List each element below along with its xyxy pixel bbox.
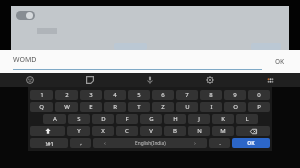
button[interactable]: OK <box>232 138 270 148</box>
staticText: OK <box>247 140 255 147</box>
button[interactable]: K <box>212 114 234 124</box>
button[interactable]: More options <box>240 73 300 87</box>
staticText: 3 <box>89 91 93 99</box>
staticText: C <box>125 127 129 135</box>
staticText: R <box>113 103 117 111</box>
staticText: 4 <box>113 91 117 99</box>
button[interactable]: L <box>236 114 258 124</box>
staticText: V <box>149 127 153 135</box>
button[interactable]: P <box>248 102 270 112</box>
button[interactable]: 6 <box>152 90 174 100</box>
button[interactable]: , <box>70 138 91 148</box>
staticText: U <box>185 103 190 111</box>
staticText: M <box>220 127 226 135</box>
button[interactable]: 0 <box>248 90 270 100</box>
staticText: 2 <box>65 91 69 99</box>
button[interactable]: 2 <box>55 90 78 100</box>
button[interactable]: E <box>80 102 102 112</box>
button[interactable]: X <box>92 126 114 136</box>
staticText: 8 <box>209 91 213 99</box>
button[interactable]: V <box>140 126 162 136</box>
button[interactable]: H <box>164 114 186 124</box>
button[interactable]: 7 <box>176 90 198 100</box>
staticText: H <box>173 115 178 123</box>
button[interactable]: Emoji keyboard <box>0 73 60 87</box>
button[interactable]: English(India) <box>93 138 207 148</box>
button[interactable]: 9 <box>224 90 246 100</box>
button[interactable]: I <box>200 102 222 112</box>
button[interactable]: A <box>43 114 66 124</box>
staticText: Q <box>39 103 44 111</box>
button[interactable]: Backspace <box>236 126 270 136</box>
staticText: J <box>198 115 200 123</box>
button[interactable]: OK <box>270 53 290 70</box>
button[interactable]: Z <box>152 102 174 112</box>
button[interactable]: J <box>188 114 210 124</box>
staticText: 5 <box>137 91 141 99</box>
staticText: 6 <box>161 91 165 99</box>
button[interactable]: . <box>209 138 230 148</box>
staticText: › <box>194 139 196 147</box>
button[interactable]: Voice input <box>120 73 180 87</box>
staticText: N <box>197 127 202 135</box>
button[interactable]: T <box>128 102 150 112</box>
staticText: L <box>245 115 249 123</box>
staticText: 0 <box>257 91 261 99</box>
staticText: D <box>101 115 106 123</box>
button[interactable]: Shift <box>30 126 65 136</box>
staticText: !#1 <box>45 140 54 147</box>
staticText: OK <box>275 57 285 66</box>
button[interactable]: D <box>92 114 114 124</box>
button[interactable]: Stickers <box>60 73 120 87</box>
button[interactable]: 1 <box>30 90 53 100</box>
staticText: I <box>210 103 213 111</box>
staticText: 1 <box>40 91 44 99</box>
button[interactable]: 3 <box>80 90 102 100</box>
button[interactable]: B <box>164 126 186 136</box>
staticText: E <box>89 103 93 111</box>
staticText: 9 <box>233 91 237 99</box>
staticText: WOMD <box>13 55 37 65</box>
button[interactable]: S <box>68 114 90 124</box>
staticText: G <box>149 115 154 123</box>
button[interactable]: W <box>55 102 78 112</box>
button[interactable]: O <box>224 102 246 112</box>
staticText: Z <box>161 103 165 111</box>
button[interactable]: M <box>212 126 234 136</box>
staticText: T <box>137 103 141 111</box>
staticText: ‹ <box>104 139 106 147</box>
staticText: A <box>53 115 57 123</box>
button[interactable]: 5 <box>128 90 150 100</box>
button[interactable]: C <box>116 126 138 136</box>
button[interactable]: WOMD <box>13 50 262 73</box>
staticText: 7 <box>185 91 189 99</box>
button[interactable]: N <box>188 126 210 136</box>
staticText: F <box>125 115 129 123</box>
button[interactable]: !#1 <box>30 138 68 148</box>
staticText: W <box>64 103 70 111</box>
button[interactable]: F <box>116 114 138 124</box>
button[interactable]: 4 <box>104 90 126 100</box>
button[interactable]: Y <box>67 126 90 136</box>
button[interactable]: R <box>104 102 126 112</box>
staticText: K <box>221 115 225 123</box>
staticText: X <box>101 127 105 135</box>
staticText: P <box>257 103 261 111</box>
staticText: English(India) <box>135 140 166 147</box>
staticText: O <box>233 103 238 111</box>
staticText: . <box>219 139 221 147</box>
staticText: S <box>77 115 81 123</box>
button[interactable]: U <box>176 102 198 112</box>
staticText: , <box>80 139 82 147</box>
staticText: Y <box>77 127 81 135</box>
button[interactable]: Keyboard settings <box>180 73 240 87</box>
staticText: B <box>173 127 177 135</box>
button[interactable]: Q <box>30 102 53 112</box>
button[interactable]: 8 <box>200 90 222 100</box>
button[interactable]: G <box>140 114 162 124</box>
